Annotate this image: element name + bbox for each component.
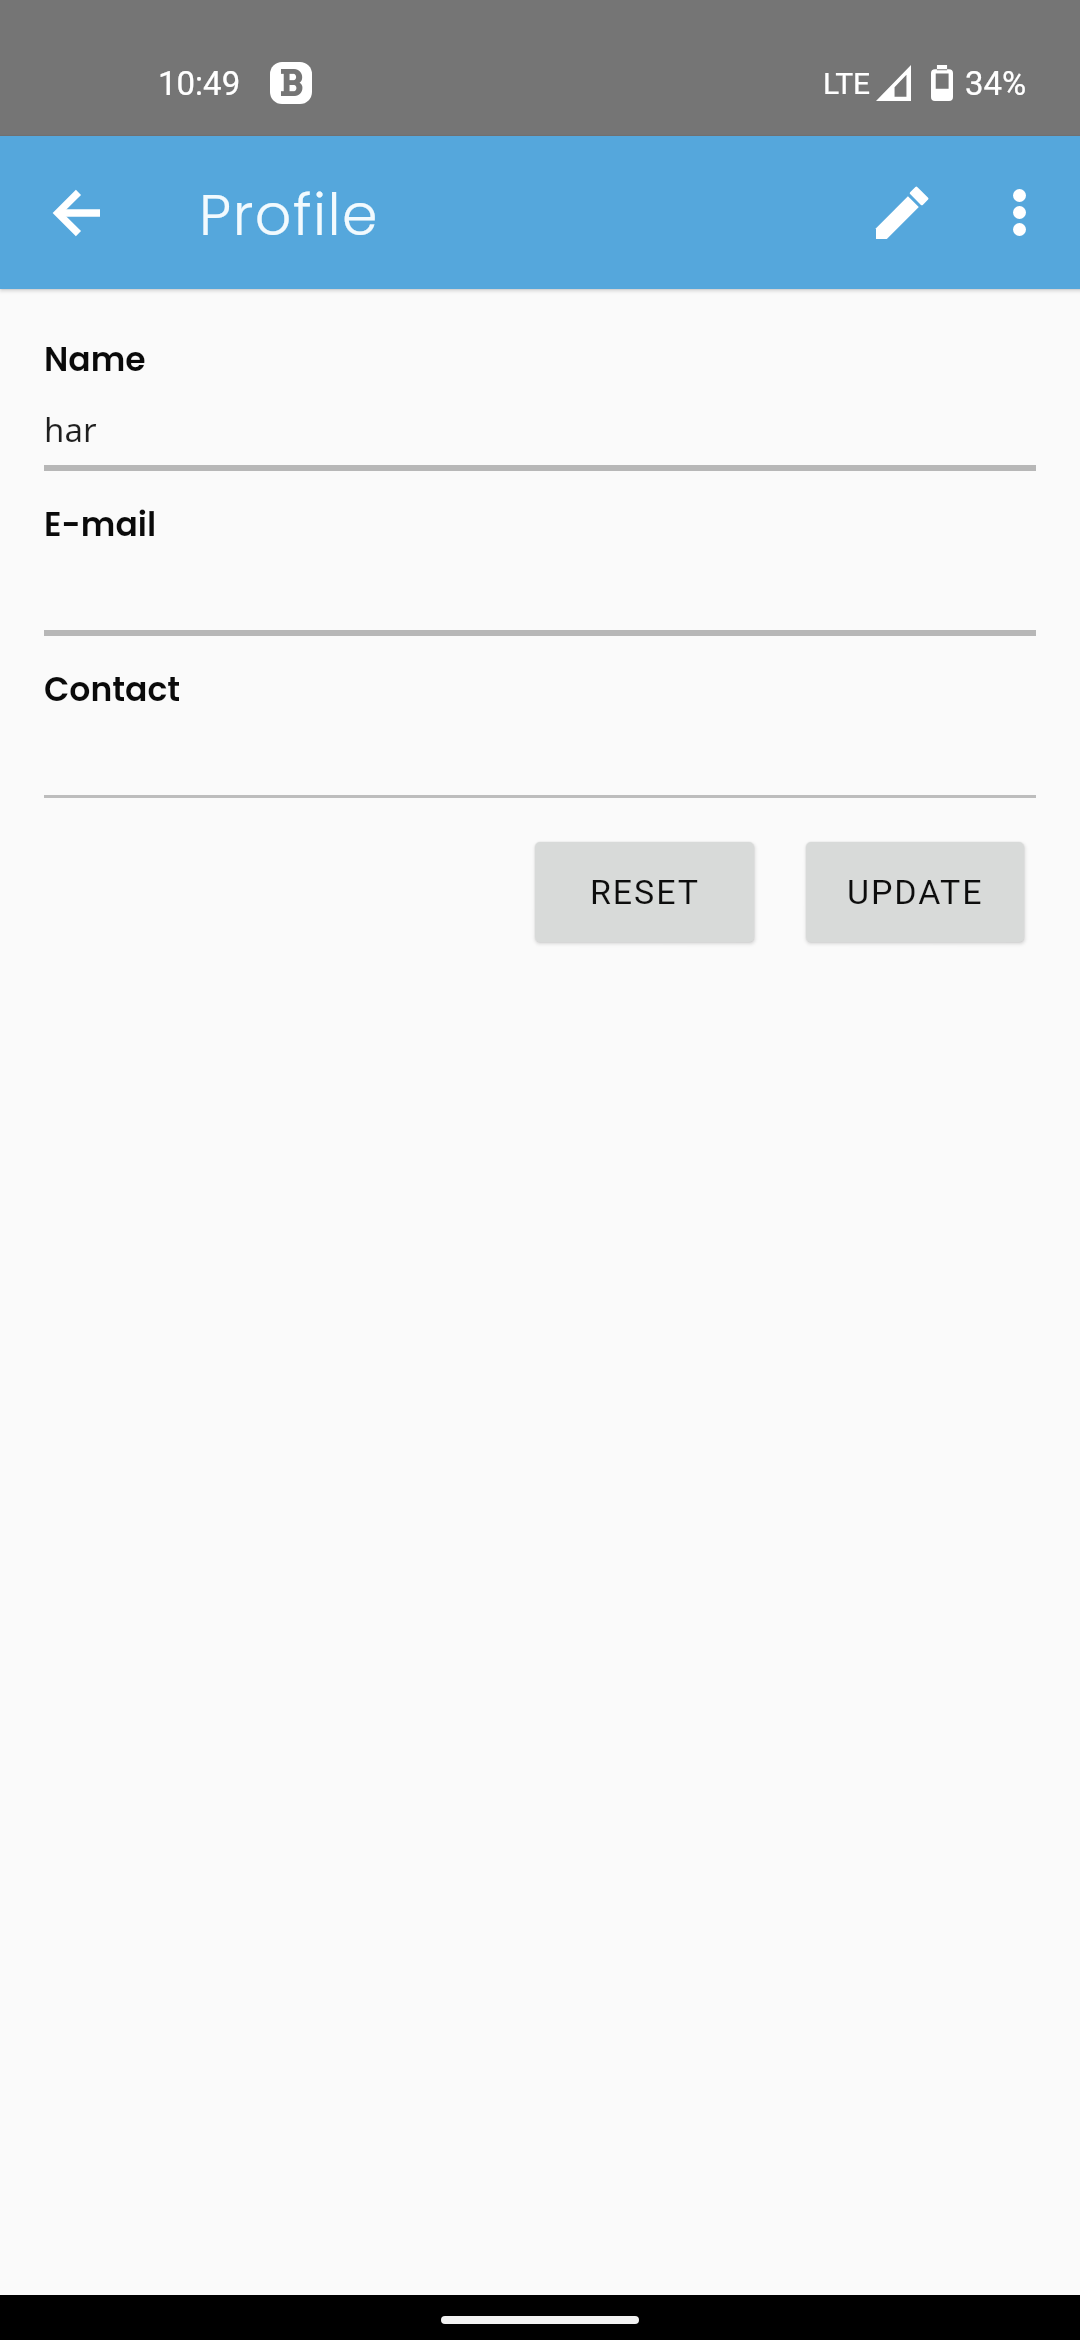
staticText: E-mail [44, 501, 157, 547]
staticText: B [279, 62, 304, 103]
staticText: Name [44, 336, 146, 382]
button[interactable]: More options [965, 136, 1073, 289]
staticText: RESET [590, 872, 700, 912]
staticText: har [44, 407, 97, 452]
staticText: LTE [823, 66, 871, 101]
staticText: Profile [199, 175, 379, 255]
button[interactable]: Edit profile [839, 136, 965, 289]
button[interactable]: RESET [535, 842, 754, 942]
button[interactable]: UPDATE [806, 842, 1024, 942]
staticText: 34% [965, 64, 1027, 103]
button[interactable]: Navigate up [18, 136, 136, 289]
staticText: Contact [44, 666, 181, 712]
staticText: 10:49 [158, 64, 241, 103]
staticText: UPDATE [847, 872, 984, 912]
